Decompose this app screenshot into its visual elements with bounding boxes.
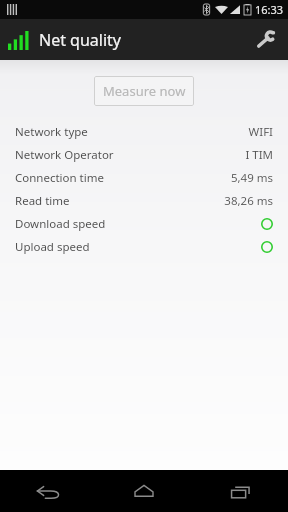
button[interactable]: Connection time [0, 166, 288, 189]
staticText: 16:33 [255, 2, 284, 17]
button[interactable]: Measure now [94, 76, 194, 106]
staticText: 5,49 ms [230, 170, 273, 186]
staticText: Read time [15, 193, 70, 209]
staticText: Net quality [39, 29, 122, 51]
button[interactable]: Upload speed [0, 235, 288, 258]
staticText: I TIM [245, 147, 273, 163]
button[interactable]: Back [0, 470, 96, 512]
staticText: WIFI [248, 124, 273, 140]
staticText: Network type [15, 124, 88, 140]
staticText: Download speed [15, 216, 106, 232]
button[interactable]: Network Operator [0, 143, 288, 166]
button[interactable]: Read time [0, 189, 288, 212]
staticText: Measure now [103, 82, 186, 100]
button[interactable]: Recent apps [192, 470, 288, 512]
staticText: Network Operator [15, 147, 114, 163]
button[interactable]: Network type [0, 120, 288, 143]
staticText: 38,26 ms [224, 193, 273, 209]
staticText: Upload speed [15, 239, 90, 255]
staticText: Connection time [15, 170, 104, 186]
button[interactable]: Download speed [0, 212, 288, 235]
button[interactable]: Home [96, 470, 192, 512]
button[interactable]: Settings [244, 19, 288, 60]
